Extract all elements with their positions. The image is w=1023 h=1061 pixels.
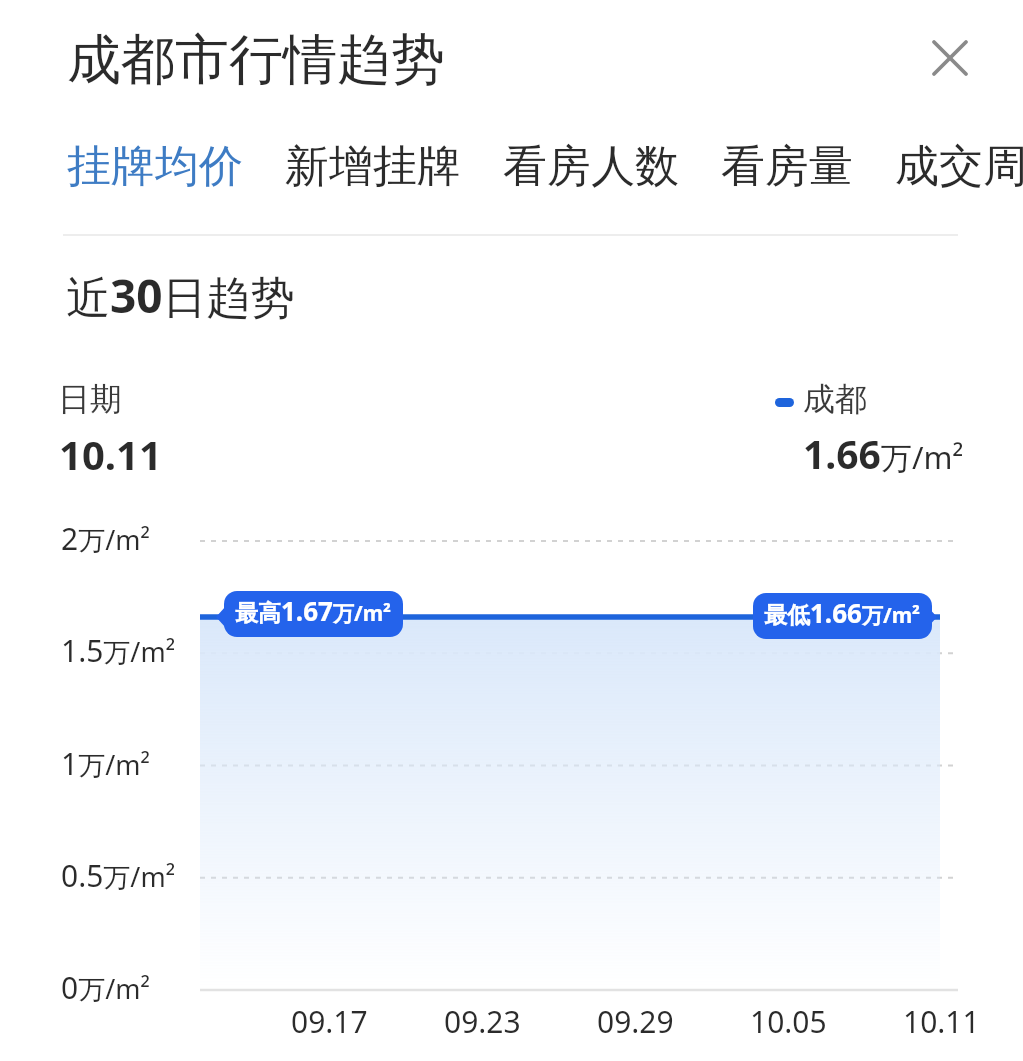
staticText: 09.17	[291, 1001, 368, 1042]
staticText: 成都	[803, 379, 867, 419]
staticText: 成交周期	[895, 139, 1023, 194]
staticText: 0.5万/m²	[61, 855, 176, 896]
button[interactable]: 看房量	[721, 125, 853, 208]
staticText: 挂牌均价	[67, 139, 243, 194]
staticText: 10.11	[59, 427, 162, 481]
staticText: 最高1.67万/m²	[235, 593, 392, 628]
button[interactable]: 新增挂牌	[285, 125, 461, 208]
staticText: 09.29	[597, 1001, 674, 1042]
staticText: 最低1.66万/m²	[764, 595, 921, 630]
button[interactable]: 看房人数	[503, 125, 679, 208]
staticText: 0万/m²	[61, 967, 150, 1008]
staticText: 新增挂牌	[285, 139, 461, 194]
staticText: 1万/m²	[61, 743, 150, 784]
staticText: 日期	[58, 379, 122, 419]
button[interactable]: 成交周期	[895, 125, 1023, 208]
staticText: 10.11	[903, 1001, 980, 1042]
staticText: 09.23	[444, 1001, 521, 1042]
staticText: 成都市行情趋势	[67, 26, 445, 94]
staticText: 1.66万/m²	[803, 427, 964, 480]
staticText: 10.05	[750, 1001, 827, 1042]
staticText: 近30日趋势	[66, 264, 295, 327]
staticText: 看房量	[721, 139, 853, 194]
staticText: 2万/m²	[61, 518, 150, 559]
staticText: 看房人数	[503, 139, 679, 194]
staticText: 1.5万/m²	[61, 630, 176, 671]
button[interactable]: 挂牌均价	[67, 125, 243, 208]
button[interactable]: Close	[906, 14, 994, 102]
